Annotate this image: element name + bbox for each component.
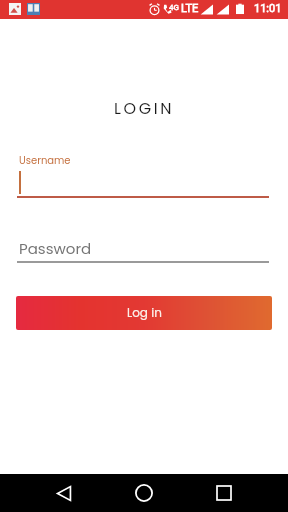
staticText: LTE — [181, 2, 199, 15]
staticText: 4G — [169, 3, 179, 12]
button[interactable]: Back — [40, 474, 88, 512]
button[interactable]: Home — [120, 474, 168, 512]
staticText: Username — [19, 153, 71, 167]
staticText: LOGIN — [0, 97, 288, 119]
button[interactable]: Recent apps — [200, 474, 248, 512]
staticText: 11:01 — [254, 2, 282, 15]
staticText: Log in — [127, 304, 162, 321]
staticText: Password — [19, 238, 92, 259]
button[interactable]: Log in — [16, 296, 272, 330]
